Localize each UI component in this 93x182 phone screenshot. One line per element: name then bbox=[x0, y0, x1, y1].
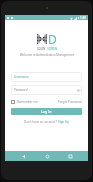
staticText: Log In bbox=[41, 109, 52, 114]
staticText: Username bbox=[14, 75, 29, 79]
button[interactable]: Home bbox=[41, 151, 53, 161]
button[interactable]: Forgot Password bbox=[58, 100, 82, 104]
button[interactable]: Sign Up bbox=[58, 120, 69, 124]
staticText: D bbox=[48, 31, 57, 47]
staticText: Don't have an account? bbox=[24, 120, 58, 124]
button[interactable]: Username bbox=[11, 72, 82, 82]
button[interactable]: Recent apps bbox=[64, 151, 76, 161]
staticText: Password bbox=[14, 88, 28, 92]
staticText: Welcome to Authentication Management bbox=[20, 53, 74, 57]
staticText: 1:30 bbox=[80, 16, 86, 20]
staticText: SCREEN bbox=[46, 47, 57, 51]
staticText: LOGIN bbox=[37, 47, 46, 51]
button[interactable]: Back bbox=[17, 151, 29, 161]
button[interactable]: Log In bbox=[11, 108, 82, 115]
staticText: Remember me bbox=[17, 100, 38, 104]
button[interactable]: Remember me bbox=[11, 100, 38, 104]
button[interactable]: Password bbox=[11, 85, 82, 95]
